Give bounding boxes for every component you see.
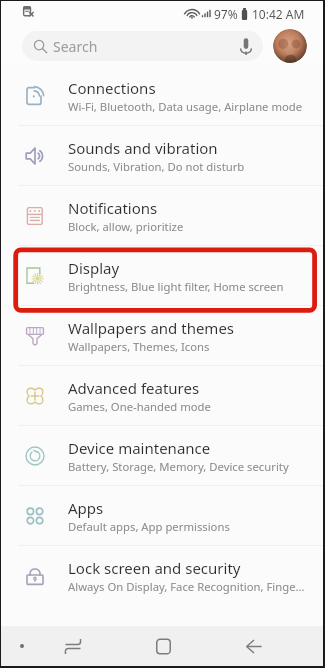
staticText: Block, allow, prioritize — [68, 219, 184, 234]
staticText: Sounds and vibration — [68, 138, 218, 158]
staticText: Display — [68, 258, 120, 278]
button[interactable]: Display — [1, 246, 323, 305]
button[interactable]: Home — [141, 626, 185, 666]
button[interactable]: Back — [232, 626, 276, 666]
button[interactable]: Connections — [1, 66, 323, 125]
staticText: Brightness, Blue light filter, Home scre… — [68, 279, 284, 294]
button[interactable]: Apps — [1, 486, 323, 545]
button[interactable]: Notifications — [1, 186, 323, 245]
staticText: Battery, Storage, Memory, Device securit… — [68, 459, 289, 474]
button[interactable]: Recents — [51, 626, 95, 666]
staticText: Games, One-handed mode — [68, 399, 211, 414]
button[interactable]: Show navigation bar — [9, 633, 35, 659]
button[interactable]: Search — [22, 31, 263, 61]
staticText: Lock screen and security — [68, 558, 241, 578]
staticText: 10:42 AM — [252, 6, 305, 22]
button[interactable]: Device maintenance — [1, 426, 323, 485]
other: Voice search — [240, 38, 252, 55]
staticText: Always On Display, Face Recognition, Fin… — [68, 579, 305, 594]
staticText: Wallpapers, Themes, Icons — [68, 339, 210, 354]
button[interactable]: Lock screen and security — [1, 546, 323, 605]
staticText: Advanced features — [68, 378, 200, 398]
staticText: Apps — [68, 498, 104, 518]
staticText: Search — [53, 37, 98, 56]
staticText: Notifications — [68, 198, 158, 218]
staticText: Connections — [68, 78, 156, 98]
button[interactable]: Profile — [273, 29, 307, 63]
staticText: Default apps, App permissions — [68, 519, 230, 534]
staticText: 97% — [214, 6, 238, 22]
button[interactable]: Sounds and vibration — [1, 126, 323, 185]
button[interactable]: Advanced features — [1, 366, 323, 425]
staticText: Sounds, Vibration, Do not disturb — [68, 159, 245, 174]
staticText: Wi-Fi, Bluetooth, Data usage, Airplane m… — [68, 99, 303, 114]
button[interactable]: Wallpapers and themes — [1, 306, 323, 365]
staticText: Device maintenance — [68, 438, 211, 458]
staticText: Wallpapers and themes — [68, 318, 235, 338]
